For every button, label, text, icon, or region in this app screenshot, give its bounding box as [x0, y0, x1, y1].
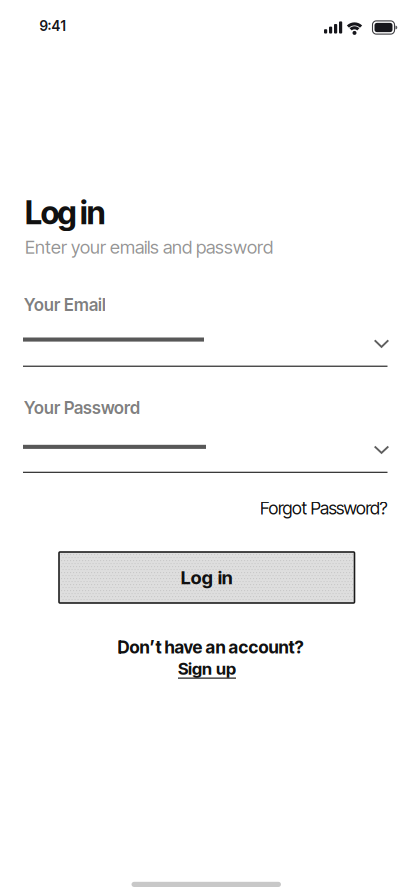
staticText: Log in	[25, 194, 106, 232]
staticText: Sign up	[178, 658, 236, 679]
staticText: 9:41	[39, 18, 65, 34]
staticText: Forgot Password?	[260, 497, 387, 519]
staticText: Don’t have an account?	[117, 637, 303, 658]
button[interactable]	[23, 337, 387, 368]
button[interactable]: Sign up	[178, 658, 236, 679]
button[interactable]	[23, 445, 387, 476]
staticText: Your Password	[24, 397, 140, 418]
staticText: Your Email	[24, 294, 106, 315]
button[interactable]: Log in	[59, 552, 354, 603]
staticText: Enter your emails and password	[25, 236, 273, 258]
staticText: Log in	[181, 566, 233, 589]
button[interactable]: Forgot Password?	[260, 497, 387, 519]
